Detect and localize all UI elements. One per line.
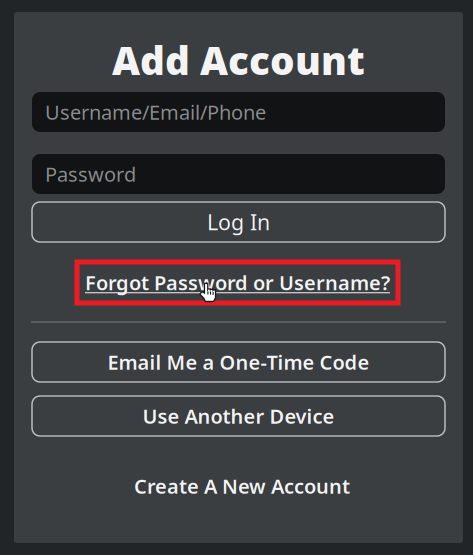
button[interactable]: Create A New Account — [35, 469, 448, 503]
staticText: Create A New Account — [134, 473, 350, 499]
staticText: Use Another Device — [142, 403, 334, 429]
button[interactable]: Use Another Device — [32, 396, 445, 436]
staticText: Email Me a One-Time Code — [107, 349, 369, 375]
staticText: Log In — [207, 208, 270, 236]
staticText: Username/Email/Phone — [45, 99, 266, 125]
button[interactable]: Log In — [32, 202, 445, 242]
staticText: Password — [45, 161, 136, 187]
button[interactable]: Username/Email/Phone — [32, 92, 445, 132]
button[interactable]: Password — [32, 154, 445, 194]
button[interactable]: Email Me a One-Time Code — [32, 342, 445, 382]
button[interactable]: Forgot Password or Username? — [77, 262, 398, 303]
staticText: Forgot Password or Username? — [85, 269, 390, 296]
staticText: Add Account — [112, 34, 365, 86]
